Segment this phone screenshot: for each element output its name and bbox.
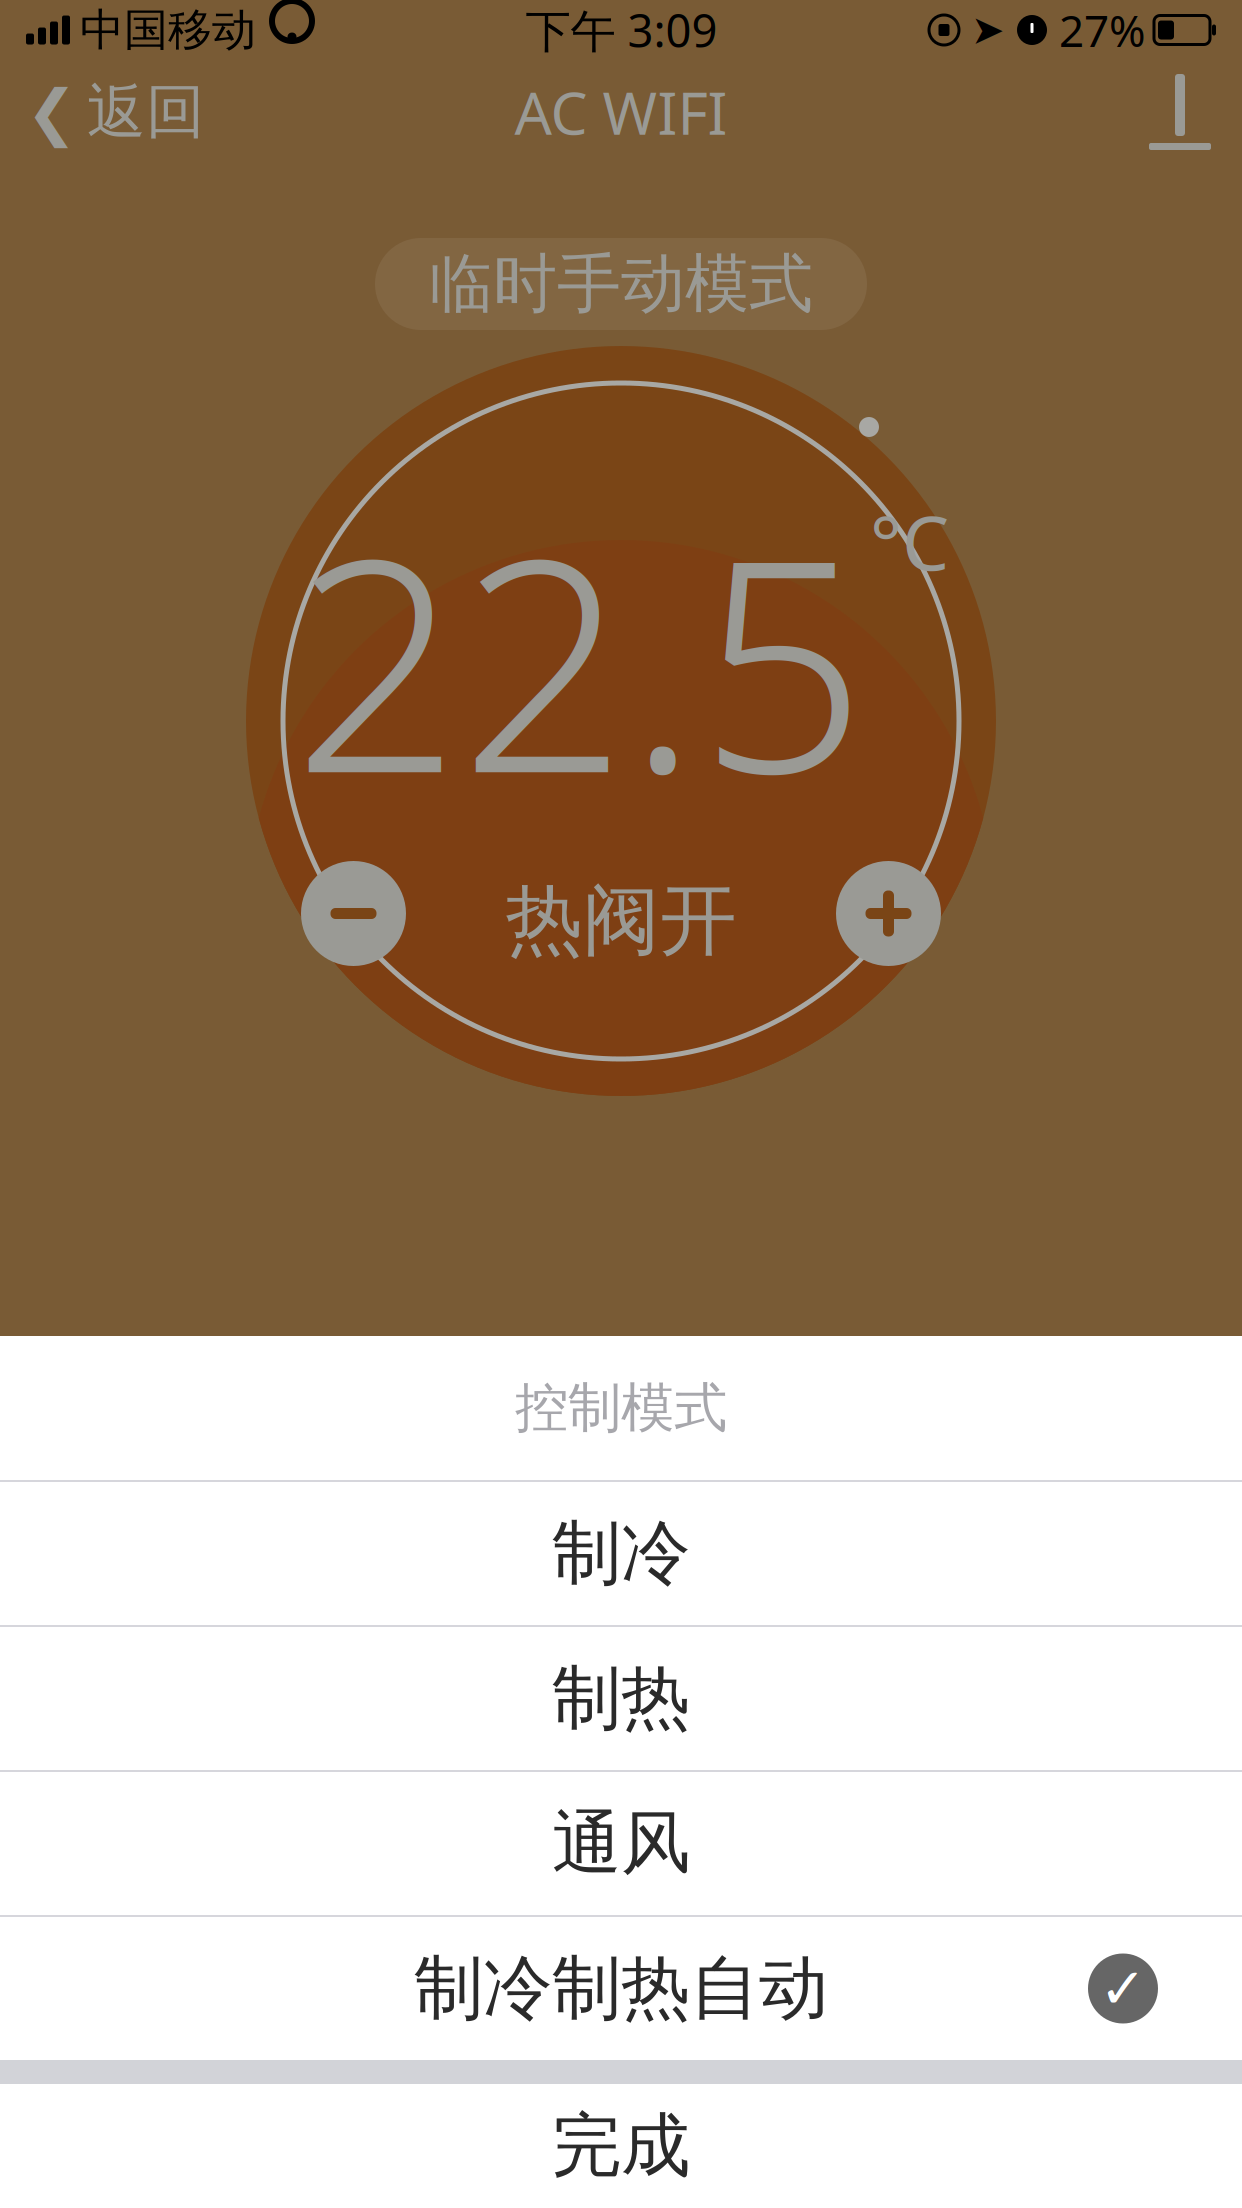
staticText: 制冷 <box>552 1511 690 1596</box>
button[interactable]: 临时手动模式 <box>375 238 867 330</box>
staticText: ❮ <box>26 77 77 147</box>
staticText: °C <box>870 492 949 591</box>
staticText: 返回 <box>87 76 205 148</box>
staticText: 临时手动模式 <box>429 245 813 323</box>
button[interactable]: 通风 <box>0 1772 1242 1915</box>
button[interactable]: 编辑 <box>1118 62 1242 162</box>
staticText: 下午 3:09 <box>525 0 717 60</box>
staticText: 制冷制热自动 <box>414 1946 828 2031</box>
staticText: 22.5 <box>293 464 866 853</box>
staticText: 27% <box>1059 1 1146 59</box>
staticText: 热阀开 <box>505 873 736 968</box>
button[interactable]: 制冷 <box>0 1482 1242 1625</box>
button[interactable]: 升高温度 <box>836 861 941 966</box>
button[interactable]: 降低温度 <box>301 861 406 966</box>
staticText: 中国移动 <box>80 3 256 57</box>
button[interactable]: ❮ <box>0 62 231 162</box>
button[interactable]: 制热 <box>0 1627 1242 1770</box>
staticText: 制热 <box>552 1656 690 1741</box>
staticText: 控制模式 <box>515 1375 727 1441</box>
staticText: AC WIFI <box>514 73 727 151</box>
button[interactable]: 制冷制热自动 <box>0 1917 1242 2060</box>
staticText: ➤ <box>971 7 1005 53</box>
staticText: 通风 <box>552 1801 690 1886</box>
staticText: 完成 <box>552 2103 690 2189</box>
staticText: ✓ <box>1099 1957 1146 2020</box>
button[interactable]: 完成 <box>0 2084 1242 2208</box>
